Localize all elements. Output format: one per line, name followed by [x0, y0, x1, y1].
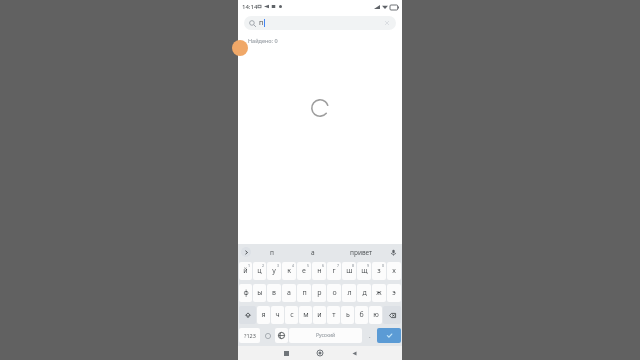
button[interactable]: Backspace	[383, 306, 401, 324]
button[interactable]: ц	[253, 262, 266, 280]
staticText: й	[243, 266, 248, 276]
button[interactable]: ы	[253, 284, 266, 302]
staticText: щ	[361, 266, 368, 276]
button[interactable]: з	[372, 262, 386, 280]
staticText: ь	[346, 310, 350, 320]
staticText: 4	[292, 263, 295, 268]
staticText: ю	[373, 310, 379, 320]
staticText: ?123	[244, 332, 256, 339]
button[interactable]: Back	[344, 346, 364, 360]
button[interactable]: ф	[239, 284, 252, 302]
button[interactable]: и	[313, 306, 326, 324]
staticText: .	[369, 332, 371, 340]
staticText: е	[302, 266, 306, 276]
button[interactable]: Clear search	[383, 19, 391, 27]
staticText: 9	[367, 263, 370, 268]
staticText: а	[311, 248, 315, 257]
button[interactable]: э	[387, 284, 401, 302]
staticText: х	[392, 266, 396, 276]
staticText: в	[272, 288, 276, 298]
staticText: 1	[248, 263, 251, 268]
staticText: 6	[322, 263, 325, 268]
staticText: м	[303, 310, 309, 320]
button[interactable]: Русский	[289, 328, 362, 343]
button[interactable]: ю	[369, 306, 382, 324]
button[interactable]: н	[312, 262, 326, 280]
button[interactable]: п	[297, 284, 311, 302]
button[interactable]: привет	[334, 244, 388, 260]
button[interactable]: у	[267, 262, 281, 280]
staticText: 2	[262, 263, 265, 268]
button[interactable]: х	[387, 262, 401, 280]
staticText: б	[359, 310, 364, 320]
staticText: 5	[307, 263, 310, 268]
button[interactable]: д	[357, 284, 371, 302]
button[interactable]: к	[282, 262, 296, 280]
button[interactable]: Shift	[239, 306, 256, 324]
staticText: ф	[243, 288, 249, 298]
staticText: 3	[277, 263, 280, 268]
button[interactable]: й	[239, 262, 252, 280]
button[interactable]: Recents	[276, 346, 296, 360]
staticText: о	[332, 288, 337, 298]
staticText: я	[261, 310, 266, 320]
button[interactable]: п	[244, 16, 396, 30]
staticText: Найдено: 0	[248, 37, 278, 44]
button[interactable]: г	[327, 262, 341, 280]
button[interactable]: ч	[271, 306, 284, 324]
staticText: 14:14	[242, 3, 258, 11]
staticText: п	[302, 288, 307, 298]
button[interactable]: Change language	[275, 328, 288, 343]
staticText: п	[259, 18, 264, 28]
button[interactable]: щ	[357, 262, 371, 280]
staticText: п	[270, 248, 274, 257]
staticText: д	[362, 288, 367, 298]
staticText: ч	[275, 310, 280, 320]
staticText: 7	[337, 263, 340, 268]
button[interactable]: б	[355, 306, 368, 324]
button[interactable]: Emoji	[261, 328, 274, 343]
button[interactable]: в	[267, 284, 281, 302]
staticText: г	[332, 266, 336, 276]
staticText: к	[287, 266, 291, 276]
staticText: ы	[257, 288, 263, 298]
staticText: л	[347, 288, 352, 298]
staticText: с	[290, 310, 294, 320]
button[interactable]: ж	[372, 284, 386, 302]
button[interactable]: а	[292, 244, 334, 260]
staticText: у	[272, 266, 276, 276]
button[interactable]: .	[363, 328, 376, 343]
staticText: 0	[382, 263, 385, 268]
staticText: ж	[376, 288, 382, 298]
button[interactable]: т	[327, 306, 340, 324]
button[interactable]: ь	[341, 306, 354, 324]
staticText: э	[392, 288, 396, 298]
button[interactable]: Home	[310, 346, 330, 360]
button[interactable]: ?123	[239, 328, 260, 343]
button[interactable]: м	[299, 306, 312, 324]
staticText: т	[332, 310, 336, 320]
staticText: а	[287, 288, 291, 298]
button[interactable]: я	[257, 306, 270, 324]
button[interactable]: Enter	[377, 328, 401, 343]
staticText: з	[377, 266, 381, 276]
staticText: р	[317, 288, 322, 298]
staticText: Русский	[316, 332, 336, 339]
button[interactable]: о	[327, 284, 341, 302]
staticText: ш	[346, 266, 353, 276]
button[interactable]: а	[282, 284, 296, 302]
button[interactable]: ш	[342, 262, 356, 280]
staticText: ц	[257, 266, 262, 276]
button[interactable]: Expand suggestions	[241, 247, 251, 257]
staticText: н	[317, 266, 322, 276]
button[interactable]: с	[285, 306, 298, 324]
button[interactable]: п	[251, 244, 292, 260]
staticText: и	[317, 310, 322, 320]
staticText: 8	[352, 263, 355, 268]
button[interactable]: е	[297, 262, 311, 280]
button[interactable]: р	[312, 284, 326, 302]
button[interactable]: Voice input	[388, 247, 399, 258]
staticText: привет	[350, 248, 373, 257]
button[interactable]: л	[342, 284, 356, 302]
